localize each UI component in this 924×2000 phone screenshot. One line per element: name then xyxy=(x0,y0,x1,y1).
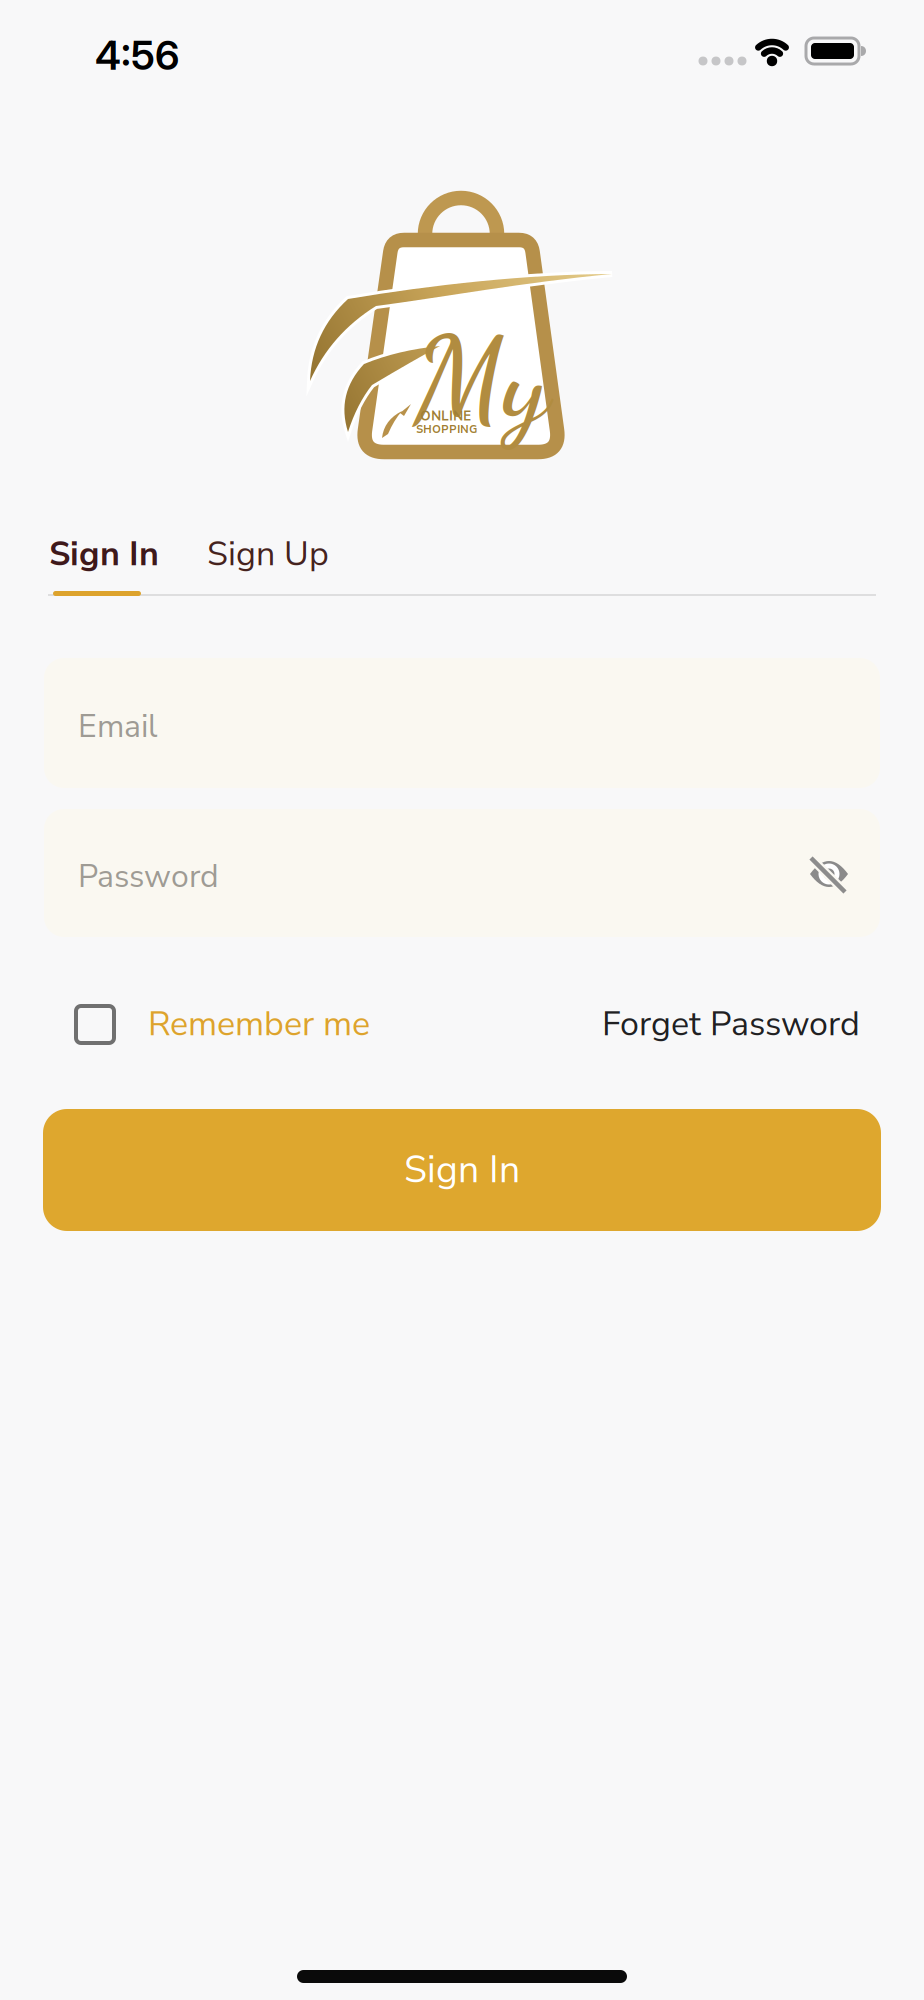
staticText: Email xyxy=(78,705,157,748)
staticText: Sign In xyxy=(49,531,159,577)
button[interactable]: Password xyxy=(44,809,880,937)
button[interactable]: Sign In xyxy=(43,1109,881,1231)
staticText: My xyxy=(413,309,549,450)
staticText: ONLINE xyxy=(420,407,471,425)
button[interactable]: Email xyxy=(44,658,880,788)
staticText: Remember me xyxy=(148,1001,370,1047)
staticText: Password xyxy=(78,855,219,898)
button[interactable]: Remember me xyxy=(76,1006,114,1043)
staticText: 4:56 xyxy=(95,31,179,79)
button[interactable]: Sign Up xyxy=(207,531,329,577)
staticText: Forget Password xyxy=(602,1001,860,1047)
staticText: Sign Up xyxy=(207,531,329,577)
button[interactable]: Forget Password xyxy=(602,1001,860,1047)
staticText: SHOPPING xyxy=(416,422,477,437)
button[interactable]: Show password xyxy=(801,846,857,902)
staticText: Sign In xyxy=(404,1144,520,1195)
button[interactable]: Sign In xyxy=(49,531,159,577)
